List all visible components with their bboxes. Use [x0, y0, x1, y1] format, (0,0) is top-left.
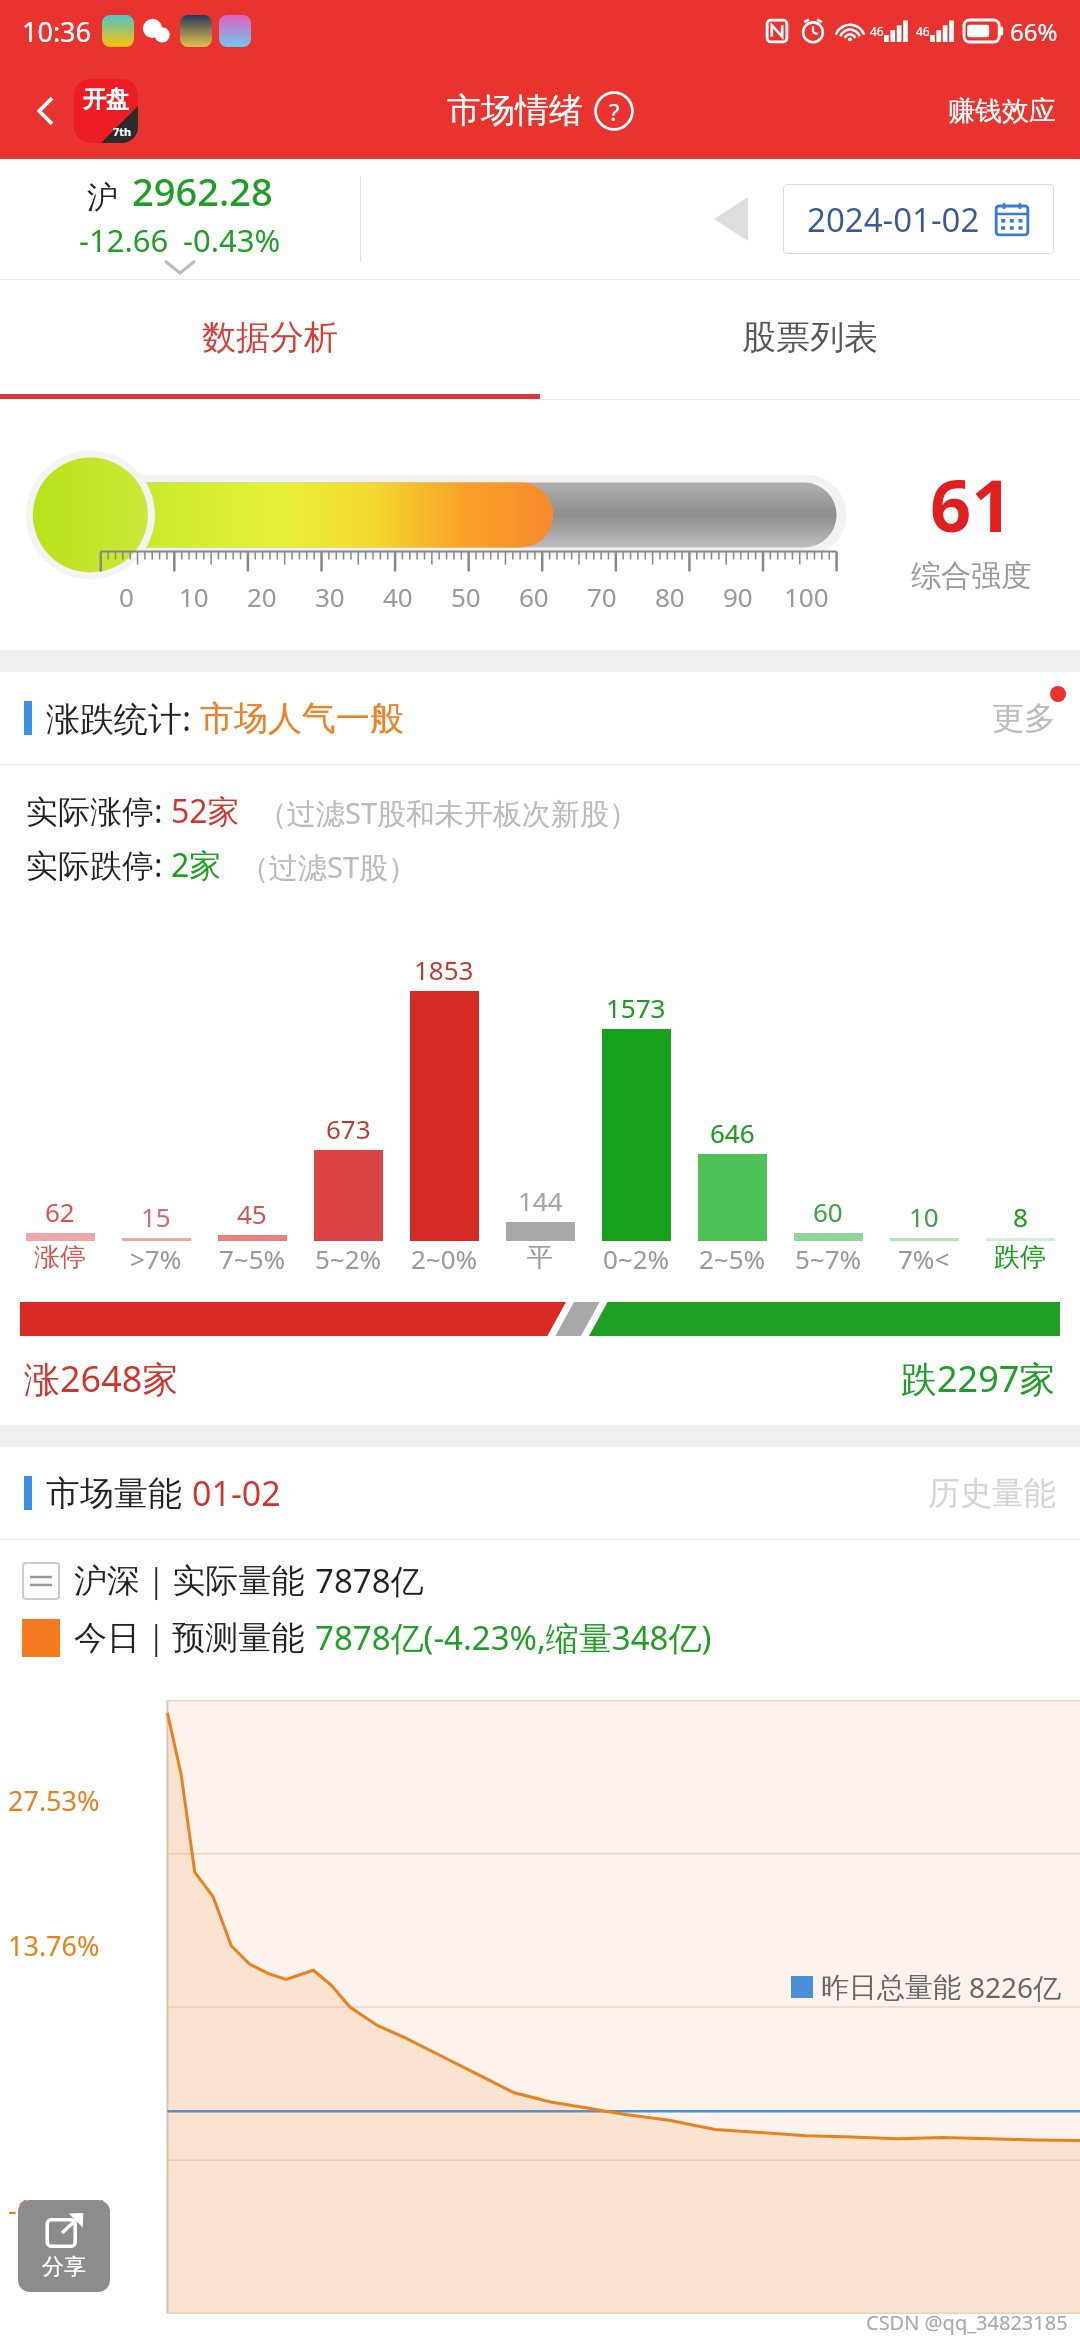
button[interactable]: 10: [876, 1199, 972, 1241]
staticText: >7%: [130, 1241, 182, 1276]
staticText: 历史量能: [928, 1473, 1056, 1513]
staticText: 2962.28: [132, 165, 273, 217]
staticText: 市场情绪: [447, 89, 583, 132]
button[interactable]: 45: [204, 1196, 300, 1241]
button[interactable]: App logo: [74, 79, 138, 143]
button[interactable]: 股票列表: [540, 280, 1080, 394]
staticText: 涨停: [34, 1241, 86, 1274]
button[interactable]: 8: [972, 1199, 1068, 1241]
staticText: 60: [519, 579, 549, 614]
staticText: 7878亿(-4.23%,缩量348亿): [315, 1615, 712, 1660]
staticText: 跌停: [994, 1241, 1046, 1274]
staticText: 赚钱效应: [948, 94, 1056, 128]
staticText: 10: [179, 579, 209, 614]
staticText: 2~5%: [699, 1241, 766, 1276]
staticText: 市场人气一般: [200, 697, 404, 740]
staticText: 市场量能: [46, 1472, 182, 1515]
button[interactable]: 62: [12, 1194, 108, 1241]
staticText: 实际涨停:: [26, 789, 163, 833]
button[interactable]: 1573: [588, 990, 684, 1241]
staticText: 50: [451, 579, 481, 614]
button[interactable]: Back: [20, 85, 72, 137]
button[interactable]: Help: [593, 90, 635, 132]
staticText: 涨跌统计:: [46, 695, 192, 741]
staticText: 144: [518, 1183, 563, 1218]
staticText: 52家: [171, 789, 240, 833]
staticText: 平: [527, 1241, 553, 1274]
staticText: 跌2297家: [901, 1354, 1056, 1403]
staticText: 7th: [113, 124, 132, 139]
staticText: 数据分析: [202, 316, 338, 359]
staticText: 10: [909, 1199, 939, 1234]
staticText: 开盘: [83, 85, 129, 114]
staticText: -0.43%: [183, 219, 281, 261]
staticText: ?: [609, 95, 620, 128]
button[interactable]: 646: [684, 1115, 780, 1241]
staticText: （过滤ST股）: [240, 847, 418, 887]
staticText: -12.66: [79, 219, 169, 261]
staticText: 01-02: [192, 1470, 281, 1516]
staticText: 30: [315, 579, 345, 614]
staticText: 40: [383, 579, 413, 614]
staticText: 沪深｜实际量能: [74, 1560, 305, 1602]
staticText: 646: [710, 1115, 755, 1150]
button[interactable]: 数据分析: [0, 280, 540, 394]
staticText: 实际跌停:: [26, 843, 163, 887]
staticText: 更多: [992, 698, 1056, 738]
staticText: 2~0%: [411, 1241, 478, 1276]
staticText: -13.76%: [8, 2191, 109, 2228]
staticText: 综合强度: [911, 557, 1031, 595]
staticText: 90: [723, 579, 753, 614]
staticText: 7~5%: [219, 1241, 286, 1276]
staticText: 今日｜预测量能: [74, 1617, 305, 1659]
staticText: 8226亿: [969, 1968, 1062, 2006]
button[interactable]: 涨跌统计:: [0, 672, 1080, 764]
staticText: 10:36: [22, 13, 92, 50]
staticText: 66%: [1010, 15, 1058, 48]
staticText: 2家: [171, 843, 222, 887]
staticText: 62: [45, 1194, 75, 1229]
button[interactable]: Previous day: [701, 189, 761, 249]
button[interactable]: 60: [780, 1194, 876, 1241]
button[interactable]: 15: [108, 1199, 204, 1241]
staticText: 46: [870, 23, 884, 39]
button[interactable]: 673: [300, 1111, 396, 1241]
staticText: 1573: [606, 990, 666, 1025]
button[interactable]: 2024-01-02: [783, 184, 1054, 254]
staticText: 80: [655, 579, 685, 614]
button[interactable]: Share: [18, 2200, 110, 2292]
staticText: 2024-01-02: [807, 197, 980, 242]
button[interactable]: 市场量能: [0, 1447, 1080, 1539]
staticText: 8: [1013, 1199, 1028, 1234]
staticText: 61: [930, 455, 1013, 553]
staticText: 70: [587, 579, 617, 614]
staticText: 涨2648家: [24, 1354, 179, 1403]
staticText: （过滤ST股和未开板次新股）: [258, 793, 639, 833]
staticText: 60: [813, 1194, 843, 1229]
staticText: 昨日总量能: [821, 1970, 961, 2005]
staticText: 1853: [414, 952, 474, 987]
staticText: 100: [784, 579, 829, 614]
button[interactable]: 1853: [396, 952, 492, 1241]
staticText: 5~2%: [315, 1241, 382, 1276]
staticText: 0: [119, 579, 134, 614]
staticText: 45: [237, 1196, 267, 1231]
staticText: 46: [916, 23, 930, 39]
staticText: 7878亿: [315, 1558, 424, 1603]
staticText: 13.76%: [8, 1927, 100, 1964]
staticText: 股票列表: [742, 316, 878, 359]
staticText: 分享: [42, 2253, 86, 2281]
button[interactable]: 沪: [0, 165, 360, 273]
staticText: 5~7%: [795, 1241, 862, 1276]
staticText: 27.53%: [8, 1782, 100, 1819]
staticText: 7%<: [898, 1241, 950, 1276]
staticText: 673: [326, 1111, 371, 1146]
staticText: CSDN @qq_34823185: [866, 2309, 1068, 2336]
staticText: 沪: [87, 178, 118, 217]
button[interactable]: 144: [492, 1183, 588, 1241]
staticText: 0~2%: [603, 1241, 670, 1276]
staticText: 15: [141, 1199, 171, 1234]
button[interactable]: 赚钱效应: [944, 90, 1060, 132]
staticText: 20: [247, 579, 277, 614]
